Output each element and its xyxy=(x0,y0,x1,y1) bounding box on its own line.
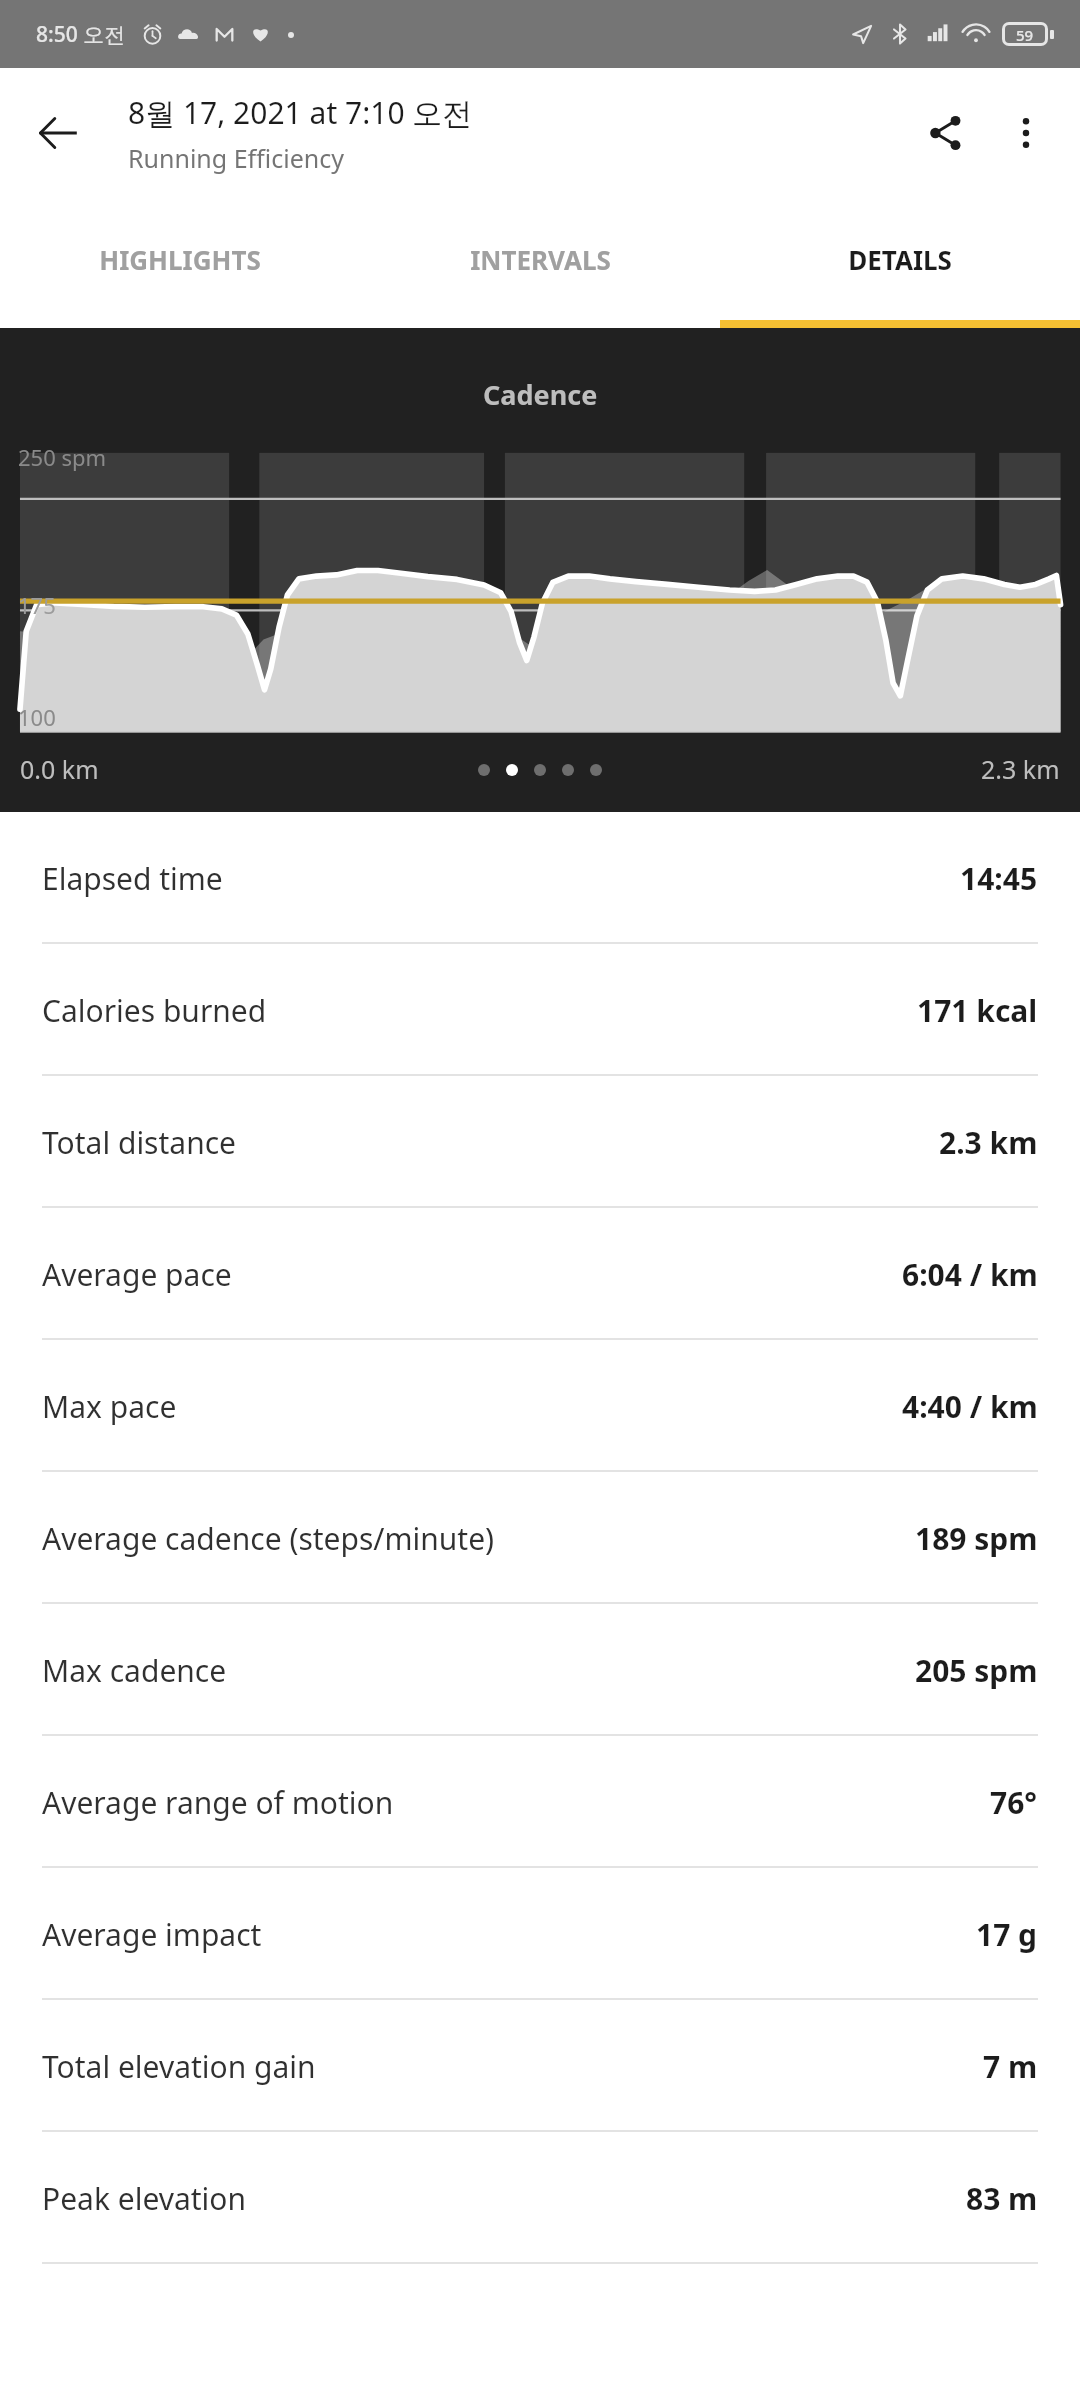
staticText: Calories burned xyxy=(42,990,917,1031)
staticText: 250 spm xyxy=(18,442,107,472)
staticText: Average range of motion xyxy=(42,1782,990,1823)
staticText: Cadence xyxy=(483,376,598,413)
staticText: INTERVALS xyxy=(470,242,611,277)
button[interactable]: Calories burned xyxy=(0,944,1080,1076)
staticText: 59 xyxy=(1016,25,1034,43)
button[interactable]: DETAILS xyxy=(720,198,1080,320)
button[interactable]: Cadence xyxy=(0,328,1080,812)
staticText: Total elevation gain xyxy=(42,2046,983,2087)
staticText: Elapsed time xyxy=(42,858,960,899)
staticText: Average pace xyxy=(42,1254,902,1295)
staticText: 2.3 km xyxy=(939,1122,1038,1163)
staticText: 189 spm xyxy=(915,1518,1038,1559)
staticText: 76° xyxy=(990,1782,1038,1823)
staticText: Running Efficiency xyxy=(128,141,344,175)
staticText: Max cadence xyxy=(42,1650,915,1691)
button[interactable]: Total elevation gain xyxy=(0,2000,1080,2132)
staticText: 0.0 km xyxy=(20,752,99,786)
staticText: 8:50 오전 xyxy=(36,20,126,49)
button[interactable]: HIGHLIGHTS xyxy=(0,198,360,320)
staticText: 171 kcal xyxy=(917,990,1038,1031)
button[interactable]: Total distance xyxy=(0,1076,1080,1208)
staticText: 175 xyxy=(18,590,56,620)
button[interactable]: Share xyxy=(906,93,986,173)
button[interactable]: Peak elevation xyxy=(0,2132,1080,2264)
staticText: HIGHLIGHTS xyxy=(99,242,261,277)
button[interactable]: Elapsed time xyxy=(0,812,1080,944)
staticText: Average impact xyxy=(42,1914,976,1955)
button[interactable]: INTERVALS xyxy=(360,198,720,320)
staticText: Average cadence (steps/minute) xyxy=(42,1518,915,1559)
staticText: Total distance xyxy=(42,1122,939,1163)
staticText: DETAILS xyxy=(848,242,952,277)
staticText: Max pace xyxy=(42,1386,902,1427)
button[interactable]: Average cadence (steps/minute) xyxy=(0,1472,1080,1604)
button[interactable]: Max pace xyxy=(0,1340,1080,1472)
button[interactable]: More options xyxy=(986,93,1066,173)
button[interactable]: Average pace xyxy=(0,1208,1080,1340)
staticText: 2.3 km xyxy=(981,752,1060,786)
staticText: 6:04 / km xyxy=(902,1254,1038,1295)
staticText: 4:40 / km xyxy=(902,1386,1038,1427)
staticText: Peak elevation xyxy=(42,2178,966,2219)
staticText: 83 m xyxy=(966,2178,1038,2219)
staticText: 7 m xyxy=(983,2046,1038,2087)
staticText: 8월 17, 2021 at 7:10 오전 xyxy=(128,92,473,133)
button[interactable]: Back xyxy=(20,95,96,171)
staticText: 100 xyxy=(18,702,56,732)
staticText: 14:45 xyxy=(960,858,1038,899)
button[interactable]: Average impact xyxy=(0,1868,1080,2000)
button[interactable]: Average range of motion xyxy=(0,1736,1080,1868)
staticText: 205 spm xyxy=(915,1650,1038,1691)
staticText: 17 g xyxy=(976,1914,1038,1955)
button[interactable]: Max cadence xyxy=(0,1604,1080,1736)
